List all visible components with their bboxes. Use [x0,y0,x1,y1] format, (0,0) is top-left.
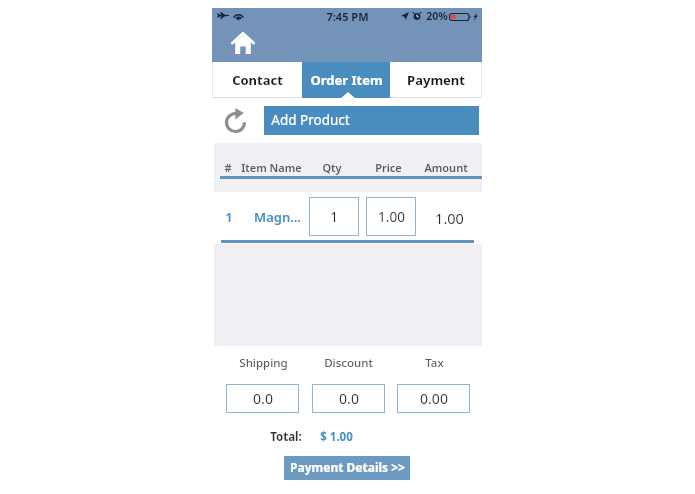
button[interactable]: 0.0 [312,384,385,413]
staticText: 7:45 PM [326,9,369,24]
button[interactable]: Payment Details >> [284,456,410,480]
button[interactable]: 0.00 [397,384,470,413]
staticText: # [224,160,232,175]
staticText: Payment Details >> [290,459,405,475]
staticText: Qty [322,160,342,175]
staticText: 1.00 [435,208,464,226]
button[interactable]: Order Item [302,62,390,98]
staticText: 20% [426,9,448,23]
staticText: Tax [425,355,444,370]
staticText: 1 [330,208,338,226]
staticText: Shipping [239,355,288,370]
staticText: 1.00 [378,208,405,226]
staticText: Total: [270,429,302,444]
staticText: Price [375,160,402,175]
button[interactable]: 1 [309,197,359,236]
staticText: Magn... [254,208,301,226]
staticText: Order Item [310,71,383,89]
staticText: $ 1.00 [320,429,353,444]
button[interactable]: Refresh [224,106,246,134]
staticText: 0.0 [339,389,359,408]
button[interactable]: Payment [390,62,482,98]
button[interactable]: 0.0 [226,384,299,413]
staticText: 0.00 [420,389,448,408]
staticText: Contact [232,71,283,89]
staticText: 1 [225,208,233,226]
button[interactable]: Add Product [264,106,479,135]
staticText: 0.0 [253,389,273,408]
staticText: Amount [424,160,468,175]
button[interactable]: Home [228,29,258,57]
staticText: Payment [407,71,465,89]
button[interactable]: 1.00 [366,197,416,236]
staticText: Add Product [271,111,350,129]
staticText: Discount [324,355,373,370]
button[interactable]: Contact [212,62,302,98]
staticText: Item Name [241,160,302,175]
